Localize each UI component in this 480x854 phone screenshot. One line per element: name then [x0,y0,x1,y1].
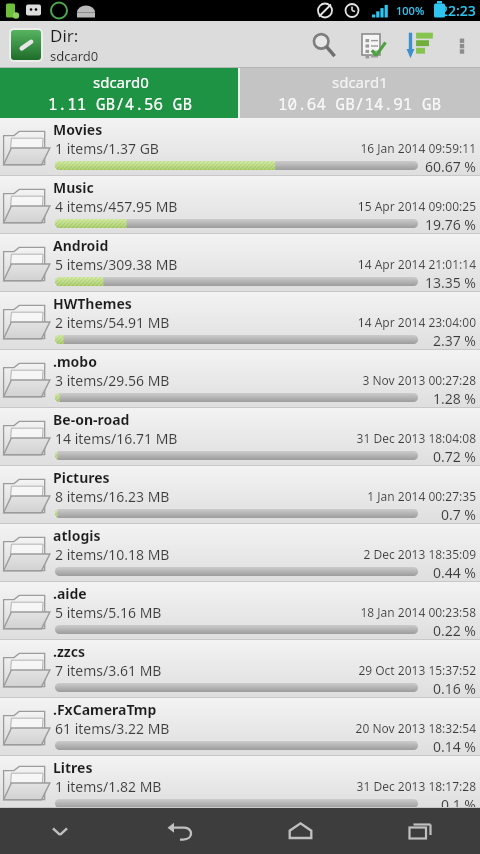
button[interactable]: .mobo [0,350,480,408]
staticText: 1 items/1.82 MB [55,777,162,796]
staticText: .zzcs [53,642,85,661]
button[interactable]: Select items [348,21,396,68]
staticText: 15 Apr 2014 09:00:25 [0,198,476,214]
button[interactable]: sdcard0 [0,68,240,118]
staticText: Pictures [53,468,110,487]
staticText: 16 Jan 2014 09:59:11 [0,140,476,156]
staticText: 10.64 GB/14.91 GB [278,93,442,115]
staticText: 8 items/16.23 MB [55,487,170,506]
button[interactable]: atlogis [0,524,480,582]
staticText: 31 Dec 2013 18:04:08 [0,430,476,446]
button[interactable]: Pictures [0,466,480,524]
staticText: Be-on-road [53,410,130,429]
staticText: Movies [53,120,103,139]
button[interactable]: More options [444,21,480,68]
button[interactable]: Hide navigation bar [0,808,120,854]
staticText: 100% [396,3,425,18]
staticText: 18 Jan 2014 00:23:58 [0,604,476,620]
staticText: sdcard0 [50,47,99,65]
button[interactable]: .aide [0,582,480,640]
button[interactable]: Navigate up [10,29,42,61]
staticText: 0.14 % [0,737,476,756]
staticText: 1.28 % [0,389,476,408]
staticText: 0.16 % [0,679,476,698]
staticText: 3 Nov 2013 00:27:28 [0,372,476,388]
staticText: 31 Dec 2013 18:17:28 [0,778,476,794]
staticText: HWThemes [53,294,132,313]
staticText: atlogis [53,526,101,545]
staticText: Music [53,178,94,197]
staticText: 14 Apr 2014 21:01:14 [0,256,476,272]
staticText: 1.11 GB/4.56 GB [48,93,193,115]
button[interactable]: Back [120,808,240,854]
staticText: sdcard0 [93,72,149,92]
staticText: 22:23 [440,1,476,20]
staticText: 29 Oct 2013 15:37:52 [0,662,476,678]
staticText: Android [53,236,109,255]
staticText: Litres [53,758,93,777]
staticText: 0.44 % [0,563,476,582]
staticText: 4 items/457.95 MB [55,197,178,216]
button[interactable]: Sort [396,21,444,68]
button[interactable]: Music [0,176,480,234]
staticText: 0.7 % [0,505,476,524]
button[interactable]: Litres [0,756,480,808]
staticText: 20 Nov 2013 18:32:54 [0,720,476,736]
button[interactable]: Home [240,808,360,854]
staticText: 2 items/10.18 MB [55,545,170,564]
staticText: 0.72 % [0,447,476,466]
staticText: 2.37 % [0,331,476,350]
staticText: 19.76 % [0,215,476,234]
button[interactable]: Android [0,234,480,292]
staticText: .mobo [53,352,97,371]
staticText: .aide [53,584,87,603]
staticText: 13.35 % [0,273,476,292]
staticText: 3 items/29.56 MB [55,371,170,390]
staticText: 2 Dec 2013 18:35:09 [0,546,476,562]
staticText: 5 items/309.38 MB [55,255,178,274]
button[interactable]: sdcard1 [240,68,480,118]
button[interactable]: HWThemes [0,292,480,350]
button[interactable]: Recent apps [360,808,480,854]
staticText: 61 items/3.22 MB [55,719,170,738]
staticText: sdcard1 [332,72,388,92]
button[interactable]: Search [300,21,348,68]
staticText: 0.22 % [0,621,476,640]
staticText: 7 items/3.61 MB [55,661,162,680]
staticText: 14 items/16.71 MB [55,429,178,448]
staticText: 5 items/5.16 MB [55,603,162,622]
button[interactable]: .FxCameraTmp [0,698,480,756]
button[interactable]: Be-on-road [0,408,480,466]
staticText: Dir: [50,24,79,47]
button[interactable]: .zzcs [0,640,480,698]
staticText: 14 Apr 2014 23:04:00 [0,314,476,330]
staticText: .FxCameraTmp [53,700,157,719]
button[interactable]: Movies [0,118,480,176]
staticText: 1 Jan 2014 00:27:35 [0,488,476,504]
staticText: 1 items/1.37 GB [55,139,159,158]
staticText: 0.1 % [0,795,476,814]
staticText: 2 items/54.91 MB [55,313,170,332]
staticText: 60.67 % [0,157,476,176]
